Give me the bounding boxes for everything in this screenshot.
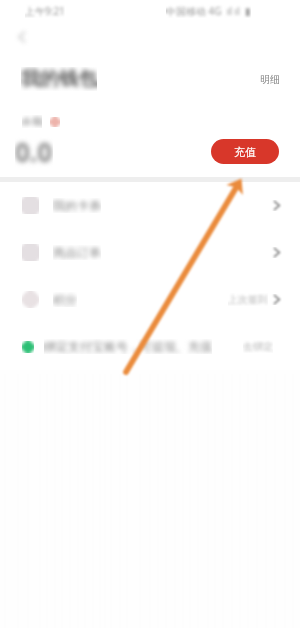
- staticText: 绑定支付宝账号，可提现、充值: [44, 339, 212, 354]
- button[interactable]: Back: [12, 27, 32, 47]
- staticText: 充值: [234, 145, 256, 159]
- staticText: 上午9:21: [25, 4, 65, 18]
- staticText: 0.0: [15, 134, 53, 169]
- button[interactable]: 明细: [256, 68, 284, 91]
- button[interactable]: 绑定支付宝账号，可提现、充值: [0, 323, 300, 370]
- button[interactable]: 我的卡券: [0, 182, 300, 229]
- staticText: 余额: [22, 115, 42, 128]
- staticText: 我的卡券: [53, 198, 101, 213]
- button[interactable]: 充值: [211, 139, 279, 164]
- staticText: 商品订单: [53, 245, 101, 260]
- button[interactable]: 商品订单: [0, 229, 300, 276]
- staticText: 明细: [260, 73, 280, 86]
- staticText: 上次签到: [228, 293, 268, 306]
- staticText: 积分: [53, 292, 77, 307]
- staticText: 去绑定: [243, 340, 273, 353]
- staticText: 中国移动 4G ıl ıl ▮: [166, 4, 251, 18]
- button[interactable]: 积分: [0, 276, 300, 323]
- staticText: 我的钱包: [21, 67, 97, 91]
